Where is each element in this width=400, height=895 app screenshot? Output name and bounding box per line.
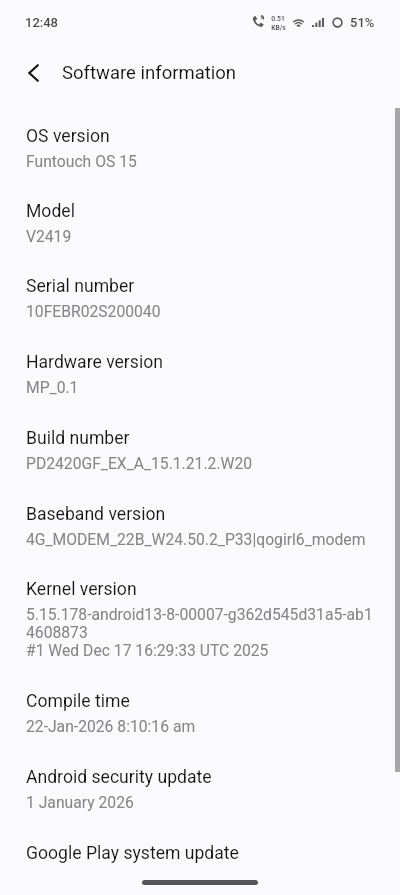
button[interactable]: Kernel version — [0, 562, 400, 670]
staticText: Google Play system update — [26, 843, 239, 864]
staticText: OS version — [26, 126, 110, 147]
staticText: MP_0.1 — [26, 378, 79, 396]
staticText: KB/s — [271, 24, 286, 32]
staticText: 10FEBR02S200040 — [26, 302, 161, 320]
staticText: 22-Jan-2026 8:10:16 am — [26, 717, 196, 735]
staticText: Funtouch OS 15 — [26, 152, 137, 170]
staticText: V2419 — [26, 227, 72, 245]
button[interactable]: Hardware version — [0, 335, 400, 406]
staticText: 0.51 — [271, 15, 285, 23]
staticText: Android security update — [26, 767, 212, 788]
button[interactable]: Serial number — [0, 259, 400, 330]
staticText: 51% — [350, 15, 375, 30]
staticText: Model — [26, 201, 75, 222]
staticText: 4608873 — [26, 623, 88, 641]
staticText: 5.15.178-android13-8-00007-g362d545d31a5… — [26, 605, 373, 623]
button[interactable]: Baseband version — [0, 487, 400, 558]
staticText: 12:48 — [25, 15, 58, 30]
button[interactable]: Compile time — [0, 674, 400, 745]
staticText: PD2420GF_EX_A_15.1.21.2.W20 — [26, 454, 253, 472]
button[interactable]: Build number — [0, 411, 400, 482]
staticText: Build number — [26, 428, 130, 449]
button[interactable]: Back — [9, 51, 57, 95]
staticText: Compile time — [26, 691, 130, 712]
button[interactable]: Android security update — [0, 750, 400, 821]
staticText: Kernel version — [26, 579, 137, 600]
staticText: Serial number — [26, 276, 135, 297]
staticText: 4G_MODEM_22B_W24.50.2_P33|qogirl6_modem — [26, 530, 366, 548]
staticText: Software information — [62, 62, 237, 84]
staticText: #1 Wed Dec 17 16:29:33 UTC 2025 — [26, 641, 269, 659]
button[interactable]: OS version — [0, 109, 400, 180]
button[interactable]: Google Play system update — [0, 826, 400, 879]
staticText: Hardware version — [26, 352, 163, 373]
staticText: Baseband version — [26, 504, 166, 525]
button[interactable]: Model — [0, 184, 400, 255]
staticText: 1 January 2026 — [26, 793, 134, 811]
